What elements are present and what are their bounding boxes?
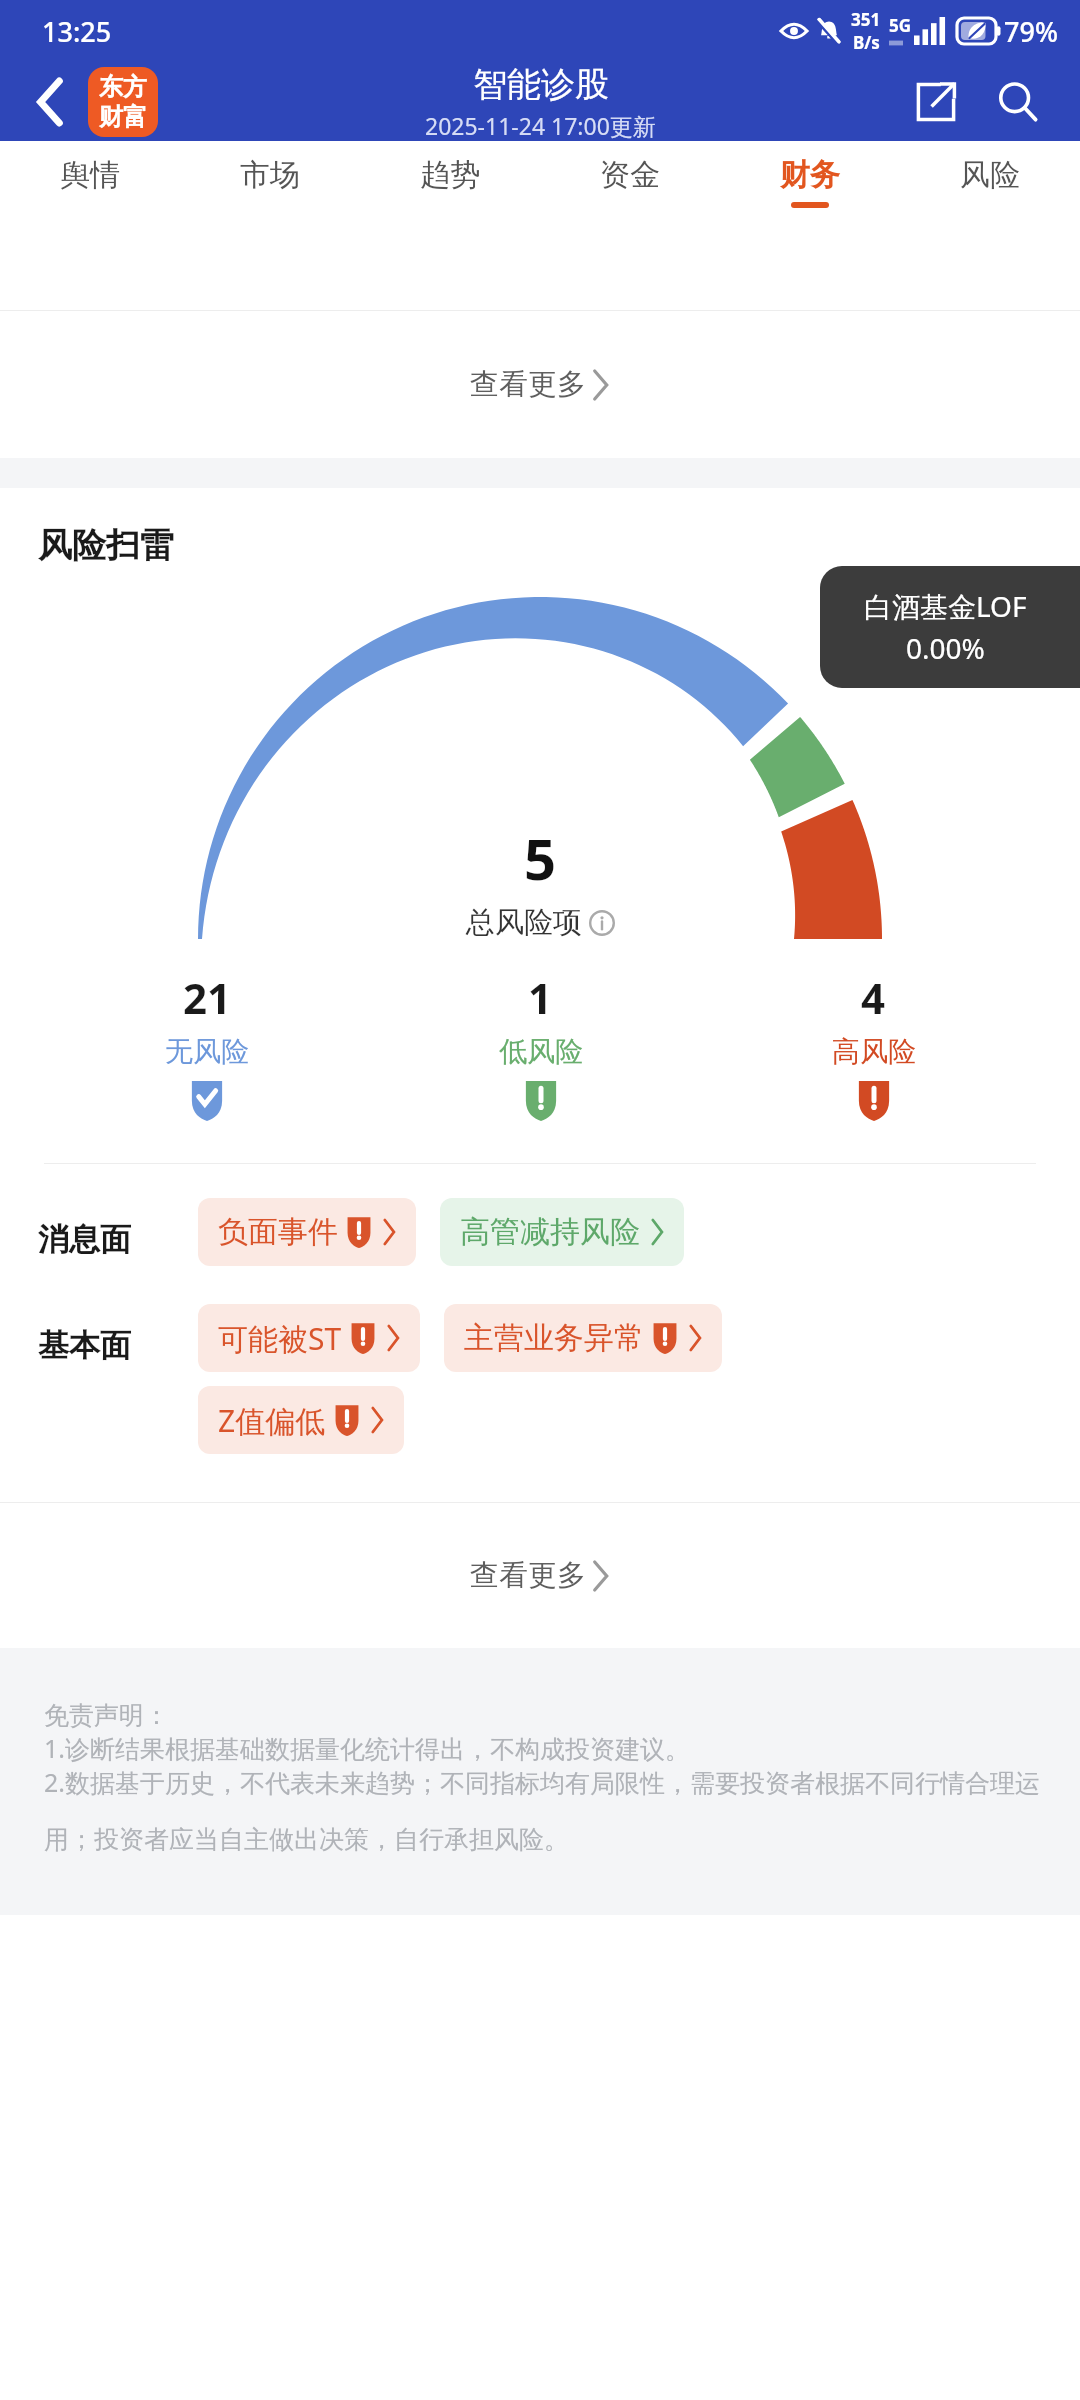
- staticText: 市场: [240, 156, 300, 194]
- staticText: 4: [861, 969, 886, 1026]
- button[interactable]: 查看更多: [0, 1503, 1080, 1648]
- staticText: 0.00%: [906, 629, 985, 667]
- staticText: 白酒基金LOF: [864, 587, 1027, 625]
- staticText: 可能被ST: [218, 1318, 342, 1359]
- staticText: 免责声明：: [44, 1700, 169, 1731]
- staticText: Z值偏低: [218, 1400, 326, 1441]
- staticText: 基本面: [38, 1326, 131, 1365]
- staticText: 高管减持风险: [460, 1213, 640, 1251]
- staticText: 趋势: [420, 156, 480, 194]
- staticText: 79%: [1004, 13, 1058, 50]
- staticText: 资金: [600, 156, 660, 194]
- button[interactable]: 财务: [720, 141, 900, 222]
- staticText: 13:25: [42, 13, 112, 50]
- staticText: 东方: [99, 72, 147, 102]
- button[interactable]: 风险: [900, 141, 1080, 222]
- staticText: 风险: [960, 156, 1020, 194]
- staticText: 舆情: [60, 156, 120, 194]
- button[interactable]: 分享: [900, 66, 972, 138]
- staticText: 351: [851, 8, 881, 31]
- staticText: 1.诊断结果根据基础数据量化统计得出，不构成投资建议。: [44, 1731, 691, 1765]
- staticText: 风险扫雷: [38, 524, 174, 567]
- button[interactable]: 资金: [540, 141, 720, 222]
- button[interactable]: 高管减持风险: [440, 1198, 684, 1266]
- staticText: 5G: [889, 14, 912, 37]
- button[interactable]: Z值偏低: [198, 1386, 404, 1454]
- staticText: 总风险项: [466, 904, 582, 941]
- button[interactable]: 查看更多: [0, 311, 1080, 458]
- button[interactable]: 返回: [22, 73, 80, 131]
- staticText: 消息面: [38, 1220, 131, 1259]
- staticText: 智能诊股: [473, 63, 609, 106]
- button[interactable]: 市场: [180, 141, 360, 222]
- button[interactable]: 搜索: [982, 66, 1054, 138]
- staticText: B/s: [853, 31, 880, 54]
- button[interactable]: 趋势: [360, 141, 540, 222]
- staticText: 21: [183, 969, 232, 1026]
- button[interactable]: 负面事件: [198, 1198, 416, 1266]
- staticText: 查看更多: [470, 1557, 586, 1594]
- staticText: 财富: [99, 102, 147, 132]
- staticText: 低风险: [499, 1034, 583, 1069]
- button[interactable]: 4: [707, 969, 1040, 1121]
- staticText: 无风险: [165, 1034, 249, 1069]
- button[interactable]: 21: [40, 969, 374, 1121]
- staticText: 查看更多: [470, 366, 586, 403]
- staticText: 负面事件: [218, 1213, 338, 1251]
- staticText: 主营业务异常: [464, 1319, 644, 1357]
- staticText: 2025-11-24 17:00更新: [425, 110, 656, 141]
- button[interactable]: 1: [374, 969, 707, 1121]
- button[interactable]: 主营业务异常: [444, 1304, 722, 1372]
- staticText: 1: [528, 969, 553, 1026]
- staticText: 高风险: [832, 1034, 916, 1069]
- staticText: 财务: [780, 156, 840, 194]
- button[interactable]: 舆情: [0, 141, 180, 222]
- staticText: 2.数据基于历史，不代表未来趋势；不同指标均有局限性，需要投资者根据不同行情合理…: [44, 1765, 1040, 1855]
- staticText: 5: [524, 820, 557, 896]
- button[interactable]: 可能被ST: [198, 1304, 420, 1372]
- button[interactable]: 东方财富: [88, 67, 158, 137]
